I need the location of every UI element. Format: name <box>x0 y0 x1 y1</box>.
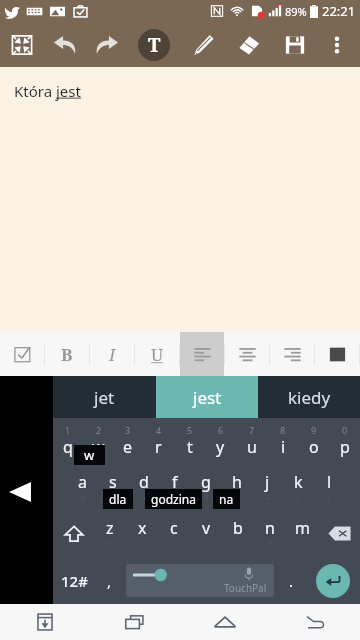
staticText: j <box>265 471 270 493</box>
staticText: k <box>294 471 303 493</box>
button[interactable]: Shift <box>53 510 94 557</box>
staticText: U <box>151 343 164 366</box>
button[interactable]: na <box>213 489 240 509</box>
button[interactable]: Eraser <box>226 22 272 67</box>
button[interactable]: Save <box>272 22 318 67</box>
staticText: v <box>202 517 211 539</box>
button[interactable]: d <box>128 464 159 510</box>
staticText: godzina <box>151 491 196 507</box>
button[interactable]: 9 <box>298 418 329 464</box>
button[interactable]: Checklist <box>0 332 44 376</box>
button[interactable]: z <box>94 510 126 557</box>
button[interactable]: B <box>45 332 89 376</box>
button[interactable]: Align center <box>225 332 269 376</box>
button[interactable]: a <box>67 464 97 510</box>
button[interactable]: Redo <box>86 22 128 67</box>
button[interactable]: Text tool <box>128 22 180 67</box>
button[interactable]: 6 <box>205 418 236 464</box>
staticText: s <box>109 471 117 493</box>
staticText: . <box>289 571 294 591</box>
staticText: B <box>61 343 73 366</box>
button[interactable]: k <box>283 464 314 510</box>
button[interactable]: godzina <box>145 489 202 509</box>
button[interactable]: jet <box>53 376 156 418</box>
button[interactable]: I <box>90 332 134 376</box>
button[interactable]: Align right <box>270 332 314 376</box>
button[interactable]: jest <box>156 376 258 418</box>
button[interactable]: s <box>97 464 128 510</box>
button[interactable]: Back <box>0 376 53 604</box>
staticText: 89% <box>285 4 307 19</box>
staticText: c <box>170 517 178 539</box>
button[interactable]: kiedy <box>258 376 360 418</box>
button[interactable]: 7 <box>236 418 267 464</box>
staticText: 1 <box>65 424 71 436</box>
staticText: u <box>247 436 257 458</box>
button[interactable]: Text colour <box>315 332 359 376</box>
staticText: kiedy <box>288 386 331 409</box>
button[interactable]: dla <box>103 489 133 509</box>
button[interactable]: 1 <box>53 418 83 464</box>
button[interactable]: Hide keyboard <box>0 604 90 640</box>
staticText: t <box>187 436 193 458</box>
staticText: 8 <box>280 424 286 436</box>
staticText: a <box>78 471 87 493</box>
button[interactable]: f <box>159 464 190 510</box>
staticText: dla <box>109 491 127 507</box>
button[interactable]: U <box>135 332 179 376</box>
staticText: ( <box>297 493 300 504</box>
button[interactable]: Undo <box>43 22 86 67</box>
staticText: z <box>106 517 114 539</box>
button[interactable]: j <box>252 464 283 510</box>
staticText: & <box>172 493 178 504</box>
staticText: 7 <box>249 424 255 436</box>
button[interactable]: 3 <box>113 418 143 464</box>
staticText: p <box>340 436 350 458</box>
button[interactable]: Recents <box>90 604 180 640</box>
staticText: ? <box>268 539 272 550</box>
button[interactable]: b <box>222 510 254 557</box>
button[interactable]: 8 <box>267 418 298 464</box>
button[interactable]: Która <box>0 67 360 332</box>
staticText: i <box>281 436 286 458</box>
staticText: 6 <box>218 424 224 436</box>
staticText: @ <box>79 493 87 504</box>
button[interactable]: h <box>221 464 252 510</box>
button[interactable]: l <box>314 464 345 510</box>
staticText: n <box>265 517 275 539</box>
staticText: na <box>219 491 234 507</box>
button[interactable]: Align left <box>180 332 224 376</box>
button[interactable]: m <box>286 510 318 557</box>
button[interactable]: g <box>190 464 221 510</box>
button[interactable]: Home <box>180 604 270 640</box>
staticText: m <box>295 517 310 539</box>
button[interactable]: Space <box>126 564 274 597</box>
staticText: g <box>201 471 211 493</box>
staticText: 9 <box>311 424 317 436</box>
button[interactable]: 12# <box>53 557 95 604</box>
staticText: w <box>92 436 105 458</box>
button[interactable]: c <box>158 510 190 557</box>
button[interactable]: v <box>190 510 222 557</box>
button[interactable]: 2 <box>83 418 113 464</box>
staticText: I <box>109 343 116 366</box>
button[interactable]: 0 <box>329 418 360 464</box>
button[interactable]: More options <box>318 22 356 67</box>
button[interactable]: Backspace <box>318 510 360 557</box>
button[interactable]: Period <box>277 557 305 604</box>
button[interactable]: 5 <box>174 418 205 464</box>
staticText: TouchPal <box>224 581 267 595</box>
button[interactable]: Pen <box>180 22 226 67</box>
button[interactable]: x <box>126 510 158 557</box>
button[interactable]: n <box>254 510 286 557</box>
button[interactable]: 4 <box>143 418 174 464</box>
button[interactable]: Collapse <box>0 22 43 67</box>
staticText: , <box>107 571 112 591</box>
button[interactable]: Back <box>270 604 360 640</box>
button[interactable]: Comma <box>95 557 123 604</box>
button[interactable]: Enter <box>305 557 360 604</box>
staticText: 3 <box>125 424 131 436</box>
